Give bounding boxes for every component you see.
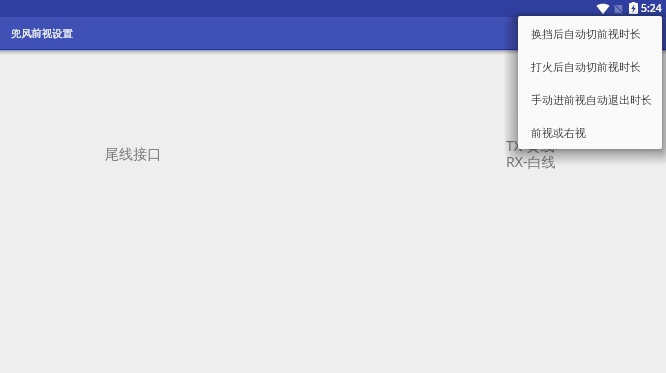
staticText: 手动进前视自动退出时长 [531, 93, 652, 107]
button[interactable]: 手动进前视自动退出时长 [518, 83, 662, 116]
button[interactable]: 换挡后自动切前视时长 [518, 17, 662, 50]
button[interactable]: 兜风前视设置 [0, 27, 73, 40]
button[interactable]: 打火后自动切前视时长 [518, 50, 662, 83]
other: Battery charging [629, 2, 638, 14]
staticText: TX-黄线 RX-白线 [506, 136, 556, 171]
button[interactable]: 前视或右视 [518, 116, 662, 149]
staticText: 5:24 [641, 1, 662, 15]
staticText: 前视或右视 [531, 126, 586, 140]
staticText: 换挡后自动切前视时长 [531, 27, 641, 41]
staticText: 打火后自动切前视时长 [531, 60, 641, 74]
other: No SIM card [614, 4, 623, 14]
button[interactable]: More options [634, 17, 666, 49]
other: Wi-Fi [596, 3, 610, 15]
staticText: 尾线接口 [105, 146, 161, 164]
